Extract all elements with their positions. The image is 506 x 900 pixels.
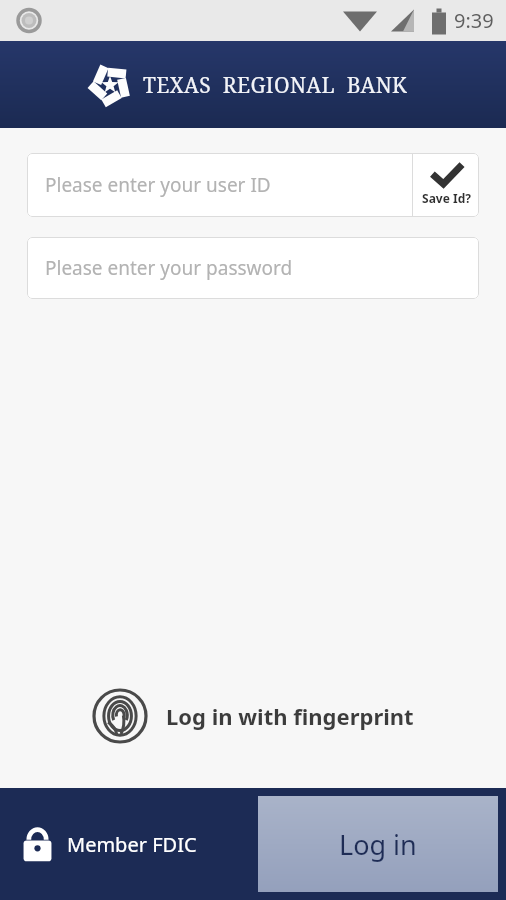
staticText: TEXAS REGIONAL BANK [143, 71, 408, 100]
staticText: Save Id? [422, 190, 471, 206]
button[interactable]: Log in [258, 796, 498, 892]
staticText: Please enter your user ID [45, 172, 271, 198]
button[interactable]: Save Id [413, 153, 479, 217]
staticText: Member FDIC [67, 831, 197, 858]
button[interactable]: Log in with fingerprint [82, 682, 424, 750]
button[interactable]: Please enter your user ID [27, 153, 412, 217]
staticText: Log in [339, 826, 417, 863]
staticText: 9:39 [454, 7, 494, 34]
staticText: Please enter your password [45, 255, 293, 281]
button[interactable]: Please enter your password [27, 237, 479, 299]
staticText: Log in with fingerprint [166, 701, 414, 731]
button[interactable]: Member FDIC [0, 820, 207, 868]
